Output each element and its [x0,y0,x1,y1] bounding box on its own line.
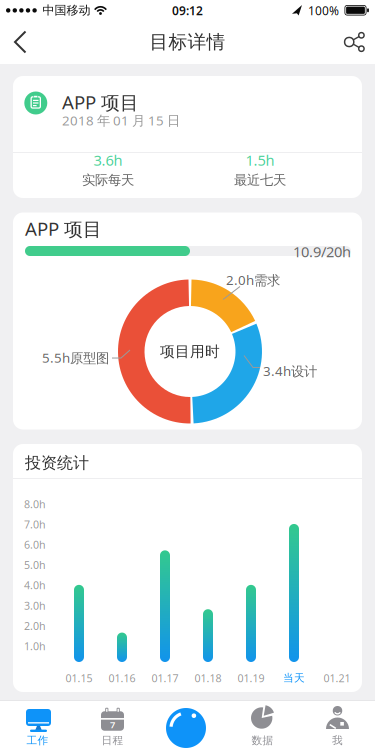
staticText: 100% [308,2,339,18]
staticText: 5.5h原型图 [42,349,109,366]
staticText: 3.6h [93,150,122,170]
staticText: 最近七天 [234,172,286,188]
staticText: APP 项目 [62,89,139,114]
staticText: 5.0h [24,558,46,572]
staticText: 7.0h [24,517,46,531]
staticText: 日程 [101,734,123,747]
staticText: 01.21 [323,671,350,685]
staticText: 项目用时 [160,342,220,360]
staticText: 2.0h需求 [226,271,280,289]
staticText: 2018 年 01 月 15 日 [62,111,180,129]
button[interactable]: 工作 [0,700,75,752]
staticText: 1.0h [24,639,46,653]
button[interactable]: Share [330,20,375,64]
staticText: 01.15 [65,671,92,685]
staticText: 2.0h [24,619,46,633]
staticText: 4.0h [24,578,46,592]
staticText: 6.0h [24,537,46,552]
staticText: 中国移动 [42,3,90,18]
button[interactable]: 7 [75,700,150,752]
staticText: APP 项目 [25,216,102,241]
button[interactable]: Add [166,708,206,748]
staticText: 投资统计 [25,453,89,473]
staticText: 8.0h [24,497,46,511]
staticText: 目标详情 [149,30,225,53]
staticText: 我 [332,734,343,747]
button[interactable]: 数据 [225,700,300,752]
staticText: 数据 [251,734,273,747]
staticText: 实际每天 [82,172,134,188]
staticText: 7 [110,719,115,731]
staticText: 01.18 [194,671,221,685]
staticText: 工作 [26,734,48,747]
staticText: 01.16 [108,671,135,685]
button[interactable]: Back [0,20,47,64]
staticText: 当天 [283,671,305,684]
button[interactable]: 我 [300,700,375,752]
staticText: 01.17 [151,671,178,685]
staticText: 01.19 [237,671,264,685]
staticText: 09:12 [172,2,203,18]
staticText: 1.5h [245,150,274,170]
staticText: 3.4h设计 [263,362,317,380]
staticText: 3.0h [24,598,46,613]
staticText: 10.9/20h [293,242,351,261]
